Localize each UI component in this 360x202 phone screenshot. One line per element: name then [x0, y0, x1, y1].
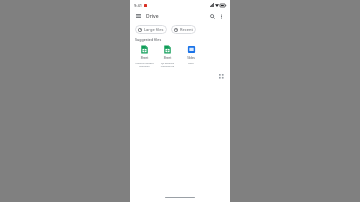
staticText: Recent: [180, 27, 193, 32]
staticText: 9:41: [134, 3, 142, 8]
staticText: Slides: [181, 56, 201, 60]
staticText: Suggested files: [135, 37, 162, 42]
staticText: Q3 expense tracking log: [158, 61, 177, 67]
button[interactable]: Sheet: [134, 44, 155, 68]
staticText: Large files: [144, 27, 164, 32]
staticText: Sheet: [135, 56, 154, 60]
button[interactable]: Search: [208, 12, 217, 21]
staticText: Monthly budget summary: [135, 61, 154, 67]
button[interactable]: More options: [217, 12, 226, 21]
staticText: Sheet: [158, 56, 177, 60]
button[interactable]: Open navigation menu: [134, 12, 143, 21]
button[interactable]: Slides: [180, 44, 202, 65]
button[interactable]: Switch to list view: [217, 72, 225, 80]
button[interactable]: Large files: [135, 25, 167, 34]
staticText: Drive: [146, 13, 159, 20]
staticText: Deck: [181, 61, 201, 64]
button[interactable]: Sheet: [157, 44, 178, 68]
button[interactable]: Recent: [171, 25, 196, 34]
